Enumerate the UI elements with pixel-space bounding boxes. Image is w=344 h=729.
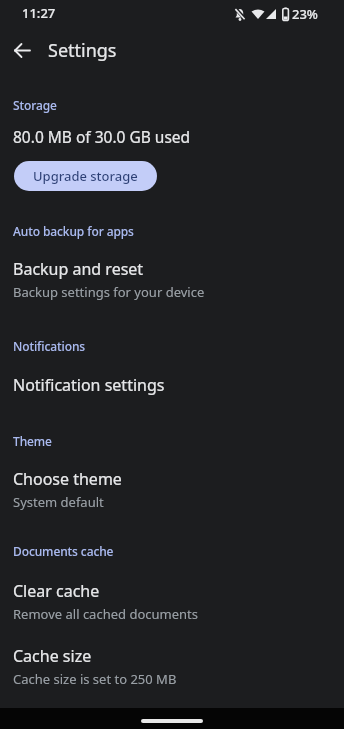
button[interactable]: Backup and reset (0, 258, 344, 302)
staticText: Theme (13, 433, 52, 449)
button[interactable]: Notification settings (0, 374, 344, 402)
staticText: Auto backup for apps (13, 223, 134, 239)
staticText: System default (13, 493, 104, 511)
staticText: Settings (48, 38, 117, 63)
button[interactable]: 80.0 MB of 30.0 GB used (0, 126, 344, 156)
staticText: 23% (292, 5, 318, 23)
staticText: 80.0 MB of 30.0 GB used (13, 126, 191, 147)
button[interactable]: Clear cache (0, 580, 344, 624)
staticText: Documents cache (13, 543, 114, 559)
button[interactable]: Upgrade storage (14, 161, 157, 191)
staticText: 11:27 (22, 4, 56, 22)
staticText: Remove all cached documents (13, 605, 198, 623)
staticText: Upgrade storage (33, 167, 138, 185)
button[interactable]: Cache size (0, 645, 344, 689)
staticText: Storage (13, 97, 57, 113)
staticText: Cache size is set to 250 MB (13, 670, 177, 688)
staticText: Clear cache (13, 580, 100, 602)
button[interactable] (6, 34, 38, 66)
staticText: Choose theme (13, 468, 122, 490)
button[interactable]: Choose theme (0, 468, 344, 512)
staticText: Backup settings for your device (13, 283, 205, 301)
staticText: Notification settings (13, 374, 165, 396)
staticText: Backup and reset (13, 258, 144, 280)
staticText: Notifications (13, 338, 86, 354)
staticText: Cache size (13, 645, 92, 667)
